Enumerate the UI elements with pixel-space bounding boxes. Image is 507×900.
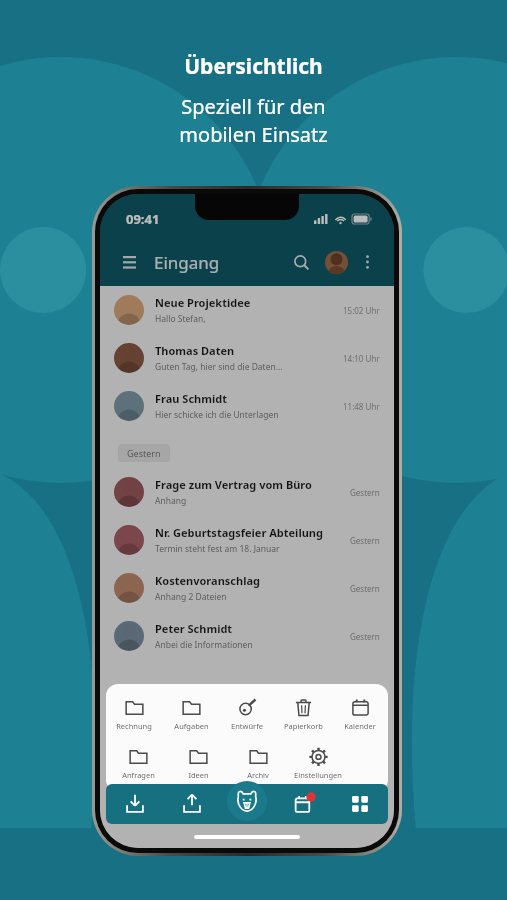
staticText: Rechnung (116, 721, 152, 731)
staticText: Anfragen (122, 770, 155, 780)
staticText: Hallo Stefan, (155, 313, 206, 325)
staticText: Kostenvoranschlag (155, 573, 260, 588)
button[interactable]: Apps (332, 784, 388, 824)
button[interactable]: Nr. Geburtstagsfeier Abteilung (100, 516, 394, 564)
button[interactable]: Archiv (230, 745, 286, 782)
button[interactable]: Kalender (276, 784, 332, 824)
button[interactable]: Suche (287, 248, 315, 276)
button[interactable]: Aufgaben (163, 696, 219, 733)
staticText: Einstellungen (294, 770, 342, 780)
staticText: Kalender (344, 721, 376, 731)
staticText: Thomas Daten (155, 343, 235, 358)
button[interactable]: Frage zum Vertrag vom Büro Mittermay (100, 468, 394, 516)
staticText: Ideen (188, 770, 209, 780)
staticText: Anhang 2 Dateien (155, 591, 227, 603)
staticText: 15:02 Uhr (343, 305, 380, 316)
button[interactable]: Start (227, 781, 267, 821)
staticText: Neue Projektidee (155, 295, 251, 310)
button[interactable]: Peter Schmidt (100, 612, 394, 660)
staticText: Übersichtlich (184, 52, 323, 81)
button[interactable]: Frau Schmidt (100, 382, 394, 430)
button[interactable]: Thomas Daten (100, 334, 394, 382)
button[interactable]: Profil (325, 251, 348, 274)
button[interactable]: Mehr (356, 251, 378, 273)
button[interactable]: Menü (116, 249, 142, 275)
staticText: Entwürfe (231, 721, 263, 731)
button[interactable]: Ideen (170, 745, 226, 782)
staticText: Speziell für den mobilen Einsatz (179, 93, 328, 148)
button[interactable]: Kostenvoranschlag (100, 564, 394, 612)
button[interactable]: Kalender (332, 696, 388, 733)
staticText: Aufgaben (174, 721, 209, 731)
staticText: Peter Schmidt (155, 621, 233, 636)
staticText: Anhang (155, 495, 187, 507)
staticText: Frau Schmidt (155, 391, 227, 406)
button[interactable]: Papierkorb (275, 696, 331, 733)
button[interactable]: Neue Projektidee (100, 286, 394, 334)
staticText: Frage zum Vertrag vom Büro Mittermay (155, 477, 342, 492)
button[interactable]: Entwürfe (219, 696, 275, 733)
staticText: 11:48 Uhr (343, 401, 380, 412)
staticText: Papierkorb (284, 721, 323, 731)
button[interactable]: Einstellungen (290, 745, 346, 782)
staticText: 09:41 (126, 210, 160, 228)
staticText: Anbei die Informationen (155, 639, 253, 651)
staticText: 14:10 Uhr (343, 353, 380, 364)
staticText: Gestern (350, 487, 380, 498)
staticText: Gestern (127, 447, 161, 459)
staticText: Termin steht fest am 18. Januar (155, 543, 280, 555)
staticText: Guten Tag, hier sind die Daten... (155, 361, 283, 373)
staticText: Gestern (350, 583, 380, 594)
staticText: Gestern (350, 631, 380, 642)
button[interactable]: Rechnung (106, 696, 162, 733)
button[interactable]: Posteingang (106, 784, 163, 824)
staticText: Eingang (154, 251, 220, 274)
button[interactable]: Postausgang (163, 784, 220, 824)
staticText: Gestern (350, 535, 380, 546)
staticText: Nr. Geburtstagsfeier Abteilung (155, 525, 323, 540)
staticText: Archiv (247, 770, 269, 780)
staticText: Hier schicke ich die Unterlagen (155, 409, 279, 421)
button[interactable]: Anfragen (110, 745, 166, 782)
